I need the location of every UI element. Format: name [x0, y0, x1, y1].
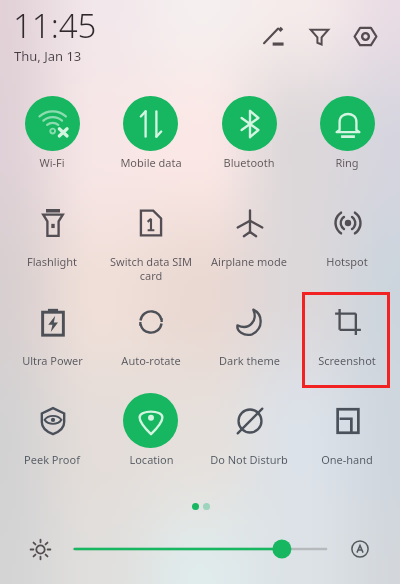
button[interactable]	[200, 88, 298, 178]
staticText: Airplane mode	[211, 254, 287, 269]
button[interactable]: Settings	[352, 23, 378, 49]
button[interactable]	[298, 385, 396, 475]
staticText: One-hand	[321, 452, 373, 467]
staticText: Location	[129, 452, 174, 467]
staticText: Flashlight	[27, 254, 77, 269]
button[interactable]	[3, 286, 101, 376]
staticText: Switch data SIM card	[106, 254, 196, 283]
staticText: Ultra Power	[22, 353, 83, 368]
staticText: Peek Proof	[24, 452, 80, 467]
staticText: Bluetooth	[223, 155, 275, 170]
button[interactable]: Brightness	[26, 535, 54, 563]
button[interactable]	[200, 385, 298, 475]
staticText: Do Not Disturb	[210, 452, 288, 467]
staticText: Ring	[335, 155, 359, 170]
button[interactable]: Auto brightness	[346, 535, 374, 563]
button[interactable]	[200, 286, 298, 376]
button[interactable]	[3, 385, 101, 475]
button[interactable]	[298, 187, 396, 277]
button[interactable]	[102, 385, 200, 475]
staticText: Mobile data	[120, 155, 182, 170]
staticText: Hotspot	[326, 254, 368, 269]
button[interactable]	[298, 88, 396, 178]
button[interactable]: Edit	[260, 23, 286, 49]
button[interactable]	[102, 88, 200, 178]
button[interactable]	[3, 88, 101, 178]
button[interactable]	[102, 286, 200, 376]
button[interactable]: Brightness slider	[74, 537, 326, 561]
button[interactable]	[200, 187, 298, 277]
staticText: Thu, Jan 13	[14, 47, 82, 65]
staticText: Dark theme	[219, 353, 280, 368]
button[interactable]	[102, 187, 200, 277]
staticText: 11:45	[13, 3, 97, 48]
button[interactable]	[3, 187, 101, 277]
button[interactable]	[298, 286, 396, 376]
staticText: Auto-rotate	[121, 353, 181, 368]
button[interactable]: Filter	[306, 23, 332, 49]
staticText: Screenshot	[318, 353, 376, 368]
staticText: Wi-Fi	[39, 155, 65, 170]
